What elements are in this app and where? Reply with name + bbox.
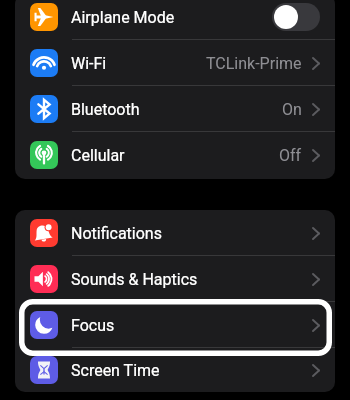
button[interactable]: Focus [15,302,335,348]
staticText: Cellular [71,146,125,165]
staticText: Focus [71,316,115,335]
button[interactable]: Wi-Fi [15,40,335,86]
button[interactable]: Notifications [15,210,335,256]
button[interactable]: Airplane Mode [15,0,335,40]
staticText: Airplane Mode [71,8,175,27]
staticText: Sounds & Haptics [71,270,198,289]
button[interactable]: Airplane Mode toggle [272,3,320,31]
staticText: Wi-Fi [71,54,107,73]
staticText: Off [279,146,302,165]
staticText: On [282,100,302,119]
button[interactable]: Screen Time [15,348,335,392]
button[interactable]: Sounds & Haptics [15,256,335,302]
button[interactable]: Cellular [15,132,335,178]
staticText: Bluetooth [71,100,140,119]
staticText: Screen Time [71,361,160,380]
staticText: Notifications [71,224,162,243]
staticText: TCLink-Prime [206,54,302,73]
button[interactable]: Bluetooth [15,86,335,132]
